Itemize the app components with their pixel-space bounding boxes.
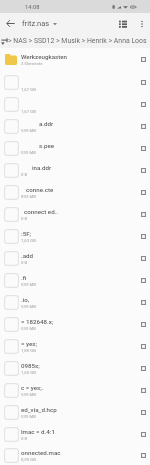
staticText: a.ddr (39, 120, 54, 127)
button[interactable]: ina.ddr (0, 159, 150, 181)
staticText: c = yes;. (21, 384, 44, 391)
button[interactable]: Select item (137, 406, 150, 419)
button[interactable]: Select item (137, 296, 150, 309)
staticText: = 182648.x; (21, 318, 54, 325)
staticText: 0 B (21, 436, 28, 441)
button[interactable]: conne.cte (0, 181, 150, 203)
staticText: 893 MB (21, 194, 36, 199)
staticText: 539 MB (21, 150, 36, 155)
button[interactable]: Select item (137, 186, 150, 199)
staticText: ina.ddr (32, 164, 52, 171)
button[interactable]: .io, (0, 291, 150, 313)
button[interactable]: Select item (137, 449, 150, 462)
button[interactable]: More options (133, 15, 150, 32)
staticText: connect ed.. (24, 208, 59, 215)
staticText: 539 MB (21, 304, 36, 309)
staticText: = yes; (21, 340, 37, 347)
staticText: 539 MB (21, 414, 36, 419)
staticText: fritz.nas (22, 19, 50, 28)
staticText: 1,66 GB (21, 370, 36, 375)
staticText: ed_via_d.hcp (21, 406, 57, 413)
button[interactable]: Select item (137, 428, 150, 441)
button[interactable]: Select item (137, 340, 150, 353)
button[interactable]: s.pee (0, 137, 150, 159)
staticText: 0 B (21, 260, 28, 265)
staticText: :5F; (21, 230, 32, 237)
button[interactable]: 1,67 GB (0, 93, 150, 115)
button[interactable]: Select item (137, 384, 150, 397)
button[interactable]: Select item (137, 164, 150, 177)
button[interactable]: a.ddr (0, 115, 150, 137)
button[interactable]: Select item (137, 208, 150, 221)
button[interactable]: Up one level (0, 34, 8, 48)
button[interactable]: Select item (137, 142, 150, 155)
staticText: 539 MB (21, 392, 36, 397)
staticText: 1,63 GB (21, 238, 36, 243)
button[interactable]: View mode (112, 13, 133, 34)
staticText: Werkzeugkasten (21, 53, 68, 60)
button[interactable]: = 182648.x; (0, 313, 150, 335)
staticText: lmac = d.4:1 (21, 428, 56, 435)
button[interactable]: Select item (137, 76, 150, 89)
button[interactable]: Werkzeugkasten (0, 48, 150, 71)
button[interactable]: connect ed.. (0, 203, 150, 225)
button[interactable]: lmac = d.4:1 (0, 423, 150, 445)
button[interactable]: fritz.nas (22, 13, 112, 34)
button[interactable]: = yes; (0, 335, 150, 357)
button[interactable]: Select item (137, 252, 150, 265)
staticText: 539 MB (21, 282, 36, 287)
staticText: s.pee (39, 142, 55, 149)
button[interactable]: Select item (137, 362, 150, 375)
button[interactable]: Select item (137, 318, 150, 331)
button[interactable]: onnected.mac (0, 445, 150, 465)
button[interactable]: Select item (137, 120, 150, 133)
button[interactable]: Select item (137, 53, 150, 66)
button[interactable]: 1,67 GB (0, 71, 150, 93)
staticText: 1,85 GB (21, 348, 36, 353)
staticText: 1,67 GB (21, 87, 36, 92)
staticText: 3 Elemente (21, 61, 43, 66)
button[interactable]: > NAS > SSD12 > Musik > Henrik > Anna Lo… (8, 37, 147, 45)
button[interactable]: Select item (137, 230, 150, 243)
staticText: 0 B (21, 172, 28, 177)
staticText: .io, (21, 296, 30, 303)
button[interactable]: Select item (137, 98, 150, 111)
button[interactable]: Back (0, 13, 21, 34)
staticText: 0,99 GB (21, 457, 36, 462)
staticText: .add (21, 252, 34, 259)
staticText: 0985s; (21, 362, 40, 369)
staticText: .fi (21, 274, 27, 281)
button[interactable]: c = yes;. (0, 379, 150, 401)
button[interactable]: :5F; (0, 225, 150, 247)
staticText: 14:08 (25, 4, 40, 11)
staticText: conne.cte (26, 186, 54, 193)
button[interactable]: ed_via_d.hcp (0, 401, 150, 423)
button[interactable]: .fi (0, 269, 150, 291)
button[interactable]: 0985s; (0, 357, 150, 379)
button[interactable]: Select item (137, 274, 150, 287)
staticText: 539 MB (21, 128, 36, 133)
staticText: onnected.mac (21, 449, 61, 456)
staticText: 0 B (21, 216, 28, 221)
staticText: 539 MB (21, 326, 36, 331)
button[interactable]: .add (0, 247, 150, 269)
staticText: 1,67 GB (21, 109, 36, 114)
